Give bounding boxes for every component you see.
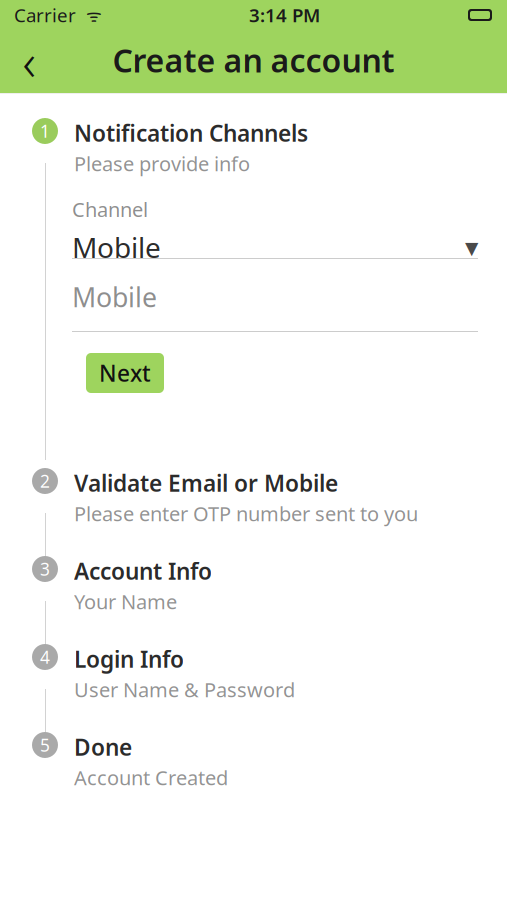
- staticText: ᯤ: [76, 3, 102, 26]
- staticText: Carrier: [14, 3, 76, 27]
- staticText: 5: [40, 733, 50, 756]
- staticText: Your Name: [74, 588, 177, 615]
- staticText: 3: [40, 557, 50, 580]
- staticText: Next: [99, 358, 151, 388]
- staticText: Create an account: [112, 39, 394, 81]
- staticText: Login Info: [74, 644, 184, 674]
- staticText: Account Created: [74, 764, 228, 791]
- staticText: Please provide info: [74, 150, 250, 177]
- staticText: Please enter OTP number sent to you: [74, 500, 418, 527]
- staticText: Mobile: [72, 229, 161, 266]
- staticText: Notification Channels: [74, 118, 308, 148]
- staticText: User Name & Password: [74, 676, 295, 703]
- staticText: ‹: [22, 27, 35, 95]
- staticText: 1: [40, 119, 50, 142]
- staticText: ▾: [465, 232, 478, 262]
- staticText: 4: [40, 645, 50, 668]
- button[interactable]: Next: [86, 353, 164, 393]
- button[interactable]: Back: [4, 36, 54, 86]
- staticText: Mobile: [72, 279, 157, 315]
- staticText: Channel: [72, 196, 148, 223]
- staticText: Validate Email or Mobile: [74, 468, 338, 498]
- staticText: 2: [40, 469, 50, 492]
- staticText: Done: [74, 732, 132, 762]
- staticText: Account Info: [74, 556, 212, 586]
- staticText: 3:14 PM: [249, 3, 320, 27]
